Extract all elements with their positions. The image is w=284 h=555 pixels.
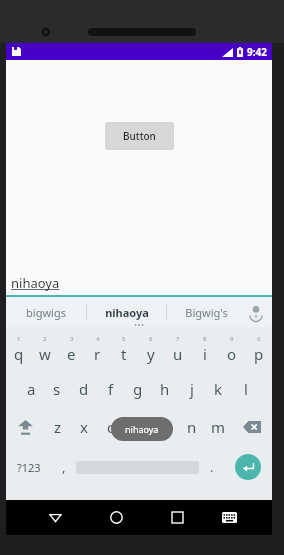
staticText: 9 <box>230 335 234 343</box>
button[interactable]: Button <box>105 122 174 150</box>
button[interactable]: Enter <box>224 446 272 488</box>
button[interactable]: Voice input <box>247 303 265 321</box>
button[interactable]: , <box>51 446 76 488</box>
staticText: g <box>133 379 143 399</box>
button[interactable]: bigwigs <box>6 305 86 320</box>
staticText: r <box>94 344 101 364</box>
staticText: . <box>210 458 214 476</box>
staticText: v <box>134 417 142 437</box>
button[interactable]: g <box>124 370 151 408</box>
button[interactable]: s <box>44 370 70 408</box>
staticText: Bigwig's <box>185 305 228 320</box>
staticText: bigwigs <box>26 305 66 320</box>
button[interactable]: nihaoya <box>87 305 166 320</box>
staticText: e <box>67 344 76 364</box>
staticText: l <box>244 379 248 399</box>
staticText: nihaoya <box>11 274 60 292</box>
staticText: o <box>227 344 237 364</box>
staticText: 7 <box>176 335 180 343</box>
staticText: 3 <box>70 335 74 343</box>
button[interactable]: 3 <box>58 329 84 370</box>
button[interactable]: Backspace <box>232 408 272 446</box>
button[interactable]: 7 <box>164 329 191 370</box>
button[interactable]: 1 <box>6 329 32 370</box>
button[interactable]: v <box>124 408 151 446</box>
button[interactable]: c <box>97 408 124 446</box>
staticText: c <box>107 417 115 437</box>
staticText: 2 <box>43 335 47 343</box>
button[interactable]: x <box>71 408 97 446</box>
button[interactable]: 0 <box>245 329 272 370</box>
staticText: 6 <box>149 335 153 343</box>
staticText: b <box>160 417 170 437</box>
button[interactable]: d <box>70 370 97 408</box>
staticText: q <box>14 344 24 364</box>
staticText: 1 <box>17 335 21 343</box>
staticText: s <box>53 379 61 399</box>
button[interactable]: Home <box>94 500 139 535</box>
staticText: p <box>254 344 264 364</box>
staticText: nihaoya <box>125 423 159 435</box>
button[interactable]: z <box>45 408 71 446</box>
staticText: a <box>27 379 36 399</box>
staticText: 4 <box>96 335 100 343</box>
button[interactable]: ?123 <box>6 446 51 488</box>
staticText: 9:42 <box>247 45 267 59</box>
staticText: Button <box>123 129 156 143</box>
button[interactable]: Recent apps <box>155 500 200 535</box>
staticText: 5 <box>122 335 126 343</box>
staticText: 8 <box>203 335 207 343</box>
staticText: h <box>160 379 170 399</box>
staticText: w <box>39 344 51 364</box>
staticText: j <box>190 379 194 399</box>
button[interactable]: 2 <box>32 329 58 370</box>
staticText: ?123 <box>17 460 41 475</box>
button[interactable]: Back <box>32 500 78 535</box>
button[interactable]: m <box>205 408 232 446</box>
button[interactable]: 4 <box>84 329 110 370</box>
button[interactable]: nihaoya <box>6 267 272 295</box>
button[interactable]: Bigwig's <box>167 305 246 320</box>
button[interactable]: f <box>97 370 124 408</box>
staticText: t <box>121 344 127 364</box>
button[interactable] <box>76 446 199 488</box>
staticText: x <box>80 417 88 437</box>
button[interactable]: Switch keyboard <box>207 500 252 535</box>
staticText: m <box>211 417 226 437</box>
staticText: y <box>147 344 155 364</box>
staticText: nihaoya <box>105 305 149 320</box>
staticText: f <box>108 379 114 399</box>
staticText: d <box>79 379 89 399</box>
button[interactable]: . <box>199 446 224 488</box>
button[interactable]: 9 <box>218 329 245 370</box>
button[interactable]: 8 <box>191 329 218 370</box>
button[interactable]: n <box>178 408 205 446</box>
staticText: z <box>54 417 62 437</box>
staticText: u <box>173 344 183 364</box>
staticText: n <box>187 417 197 437</box>
button[interactable]: 5 <box>110 329 137 370</box>
staticText: 0 <box>257 335 261 343</box>
staticText: , <box>62 458 66 476</box>
button[interactable]: h <box>151 370 178 408</box>
button[interactable]: Shift <box>6 408 45 446</box>
button[interactable]: j <box>178 370 205 408</box>
button[interactable]: b <box>151 408 178 446</box>
button[interactable]: k <box>205 370 232 408</box>
button[interactable]: 6 <box>137 329 164 370</box>
staticText: i <box>203 344 207 364</box>
button[interactable]: l <box>232 370 259 408</box>
button[interactable]: a <box>18 370 44 408</box>
staticText: k <box>214 379 223 399</box>
